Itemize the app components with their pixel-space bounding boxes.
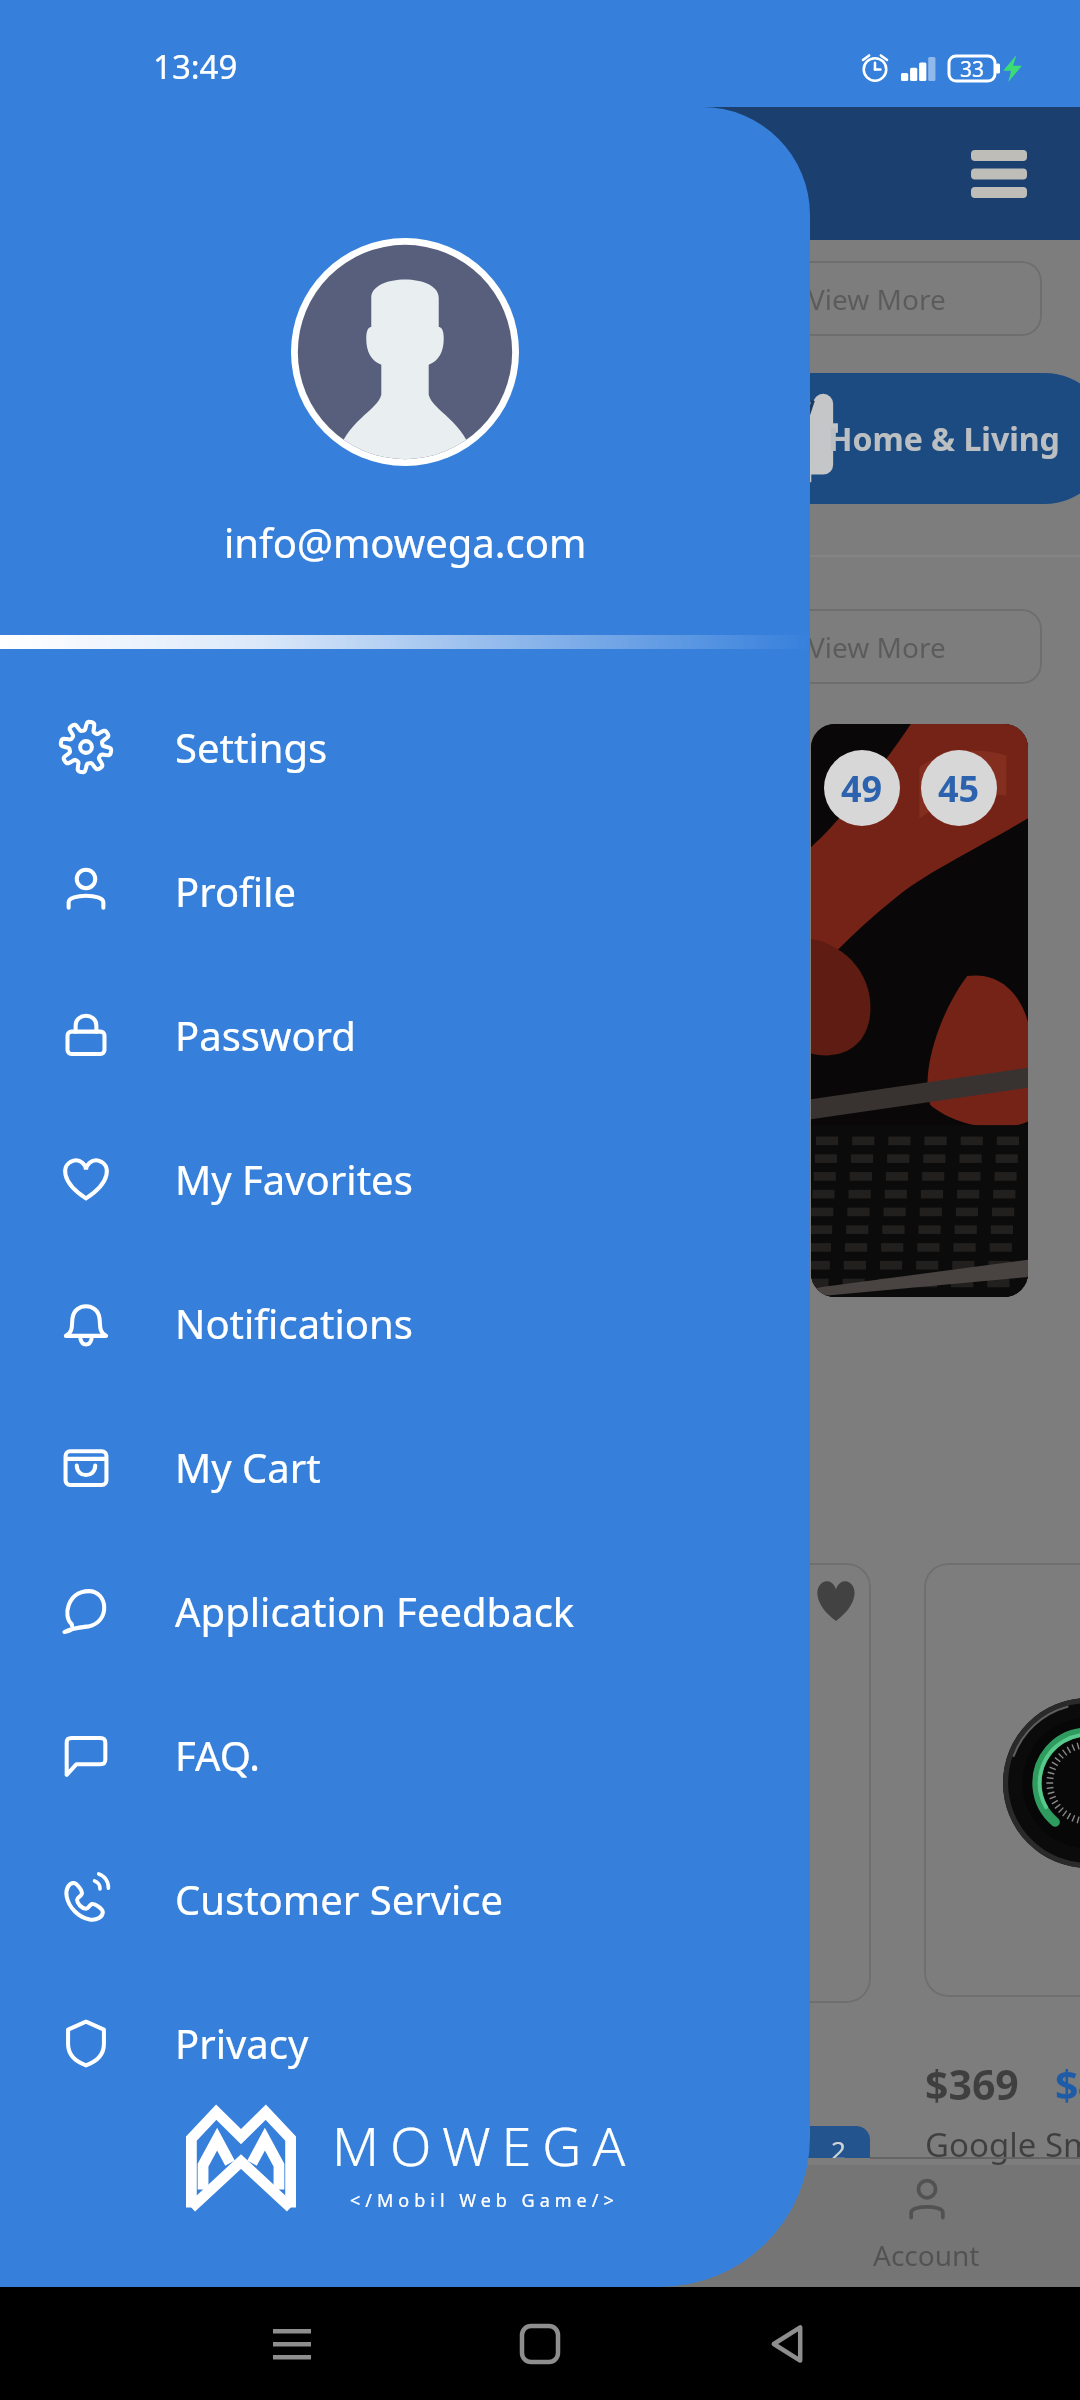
button[interactable]: My Cart: [0, 1395, 810, 1539]
staticText: </Mobil Web Game/>: [350, 2188, 619, 2213]
button[interactable]: View More: [680, 261, 1042, 336]
staticText: View More: [808, 280, 946, 318]
button[interactable]: Recents: [232, 2287, 352, 2400]
staticText: 45: [938, 764, 980, 813]
staticText: MOWEGA: [332, 2108, 637, 2182]
button[interactable]: Notifications: [0, 1251, 810, 1395]
button[interactable]: View More: [680, 609, 1042, 684]
staticText: Profile: [175, 864, 297, 918]
button[interactable]: [924, 1563, 1080, 1997]
button[interactable]: Privacy: [0, 1971, 810, 2115]
button[interactable]: Profile: [0, 819, 810, 963]
staticText: $369: [925, 2056, 1019, 2112]
staticText: 33: [960, 55, 985, 84]
staticText: Customer Service: [175, 1872, 504, 1926]
staticText: $4: [1055, 2056, 1080, 2112]
button[interactable]: Application Feedback: [0, 1539, 810, 1683]
staticText: Google Sm: [925, 2122, 1080, 2167]
staticText: 2: [831, 2132, 846, 2158]
staticText: info@mowega.com: [224, 515, 587, 569]
staticText: Settings: [175, 720, 328, 774]
staticText: Notifications: [175, 1296, 413, 1350]
staticText: Home & Living: [828, 417, 1060, 461]
staticText: Password: [175, 1008, 356, 1062]
button[interactable]: [560, 1563, 871, 2003]
staticText: 13:49: [153, 44, 238, 89]
staticText: My Cart: [175, 1440, 321, 1494]
staticText: FAQ.: [175, 1728, 261, 1782]
button[interactable]: FAQ.: [0, 1683, 810, 1827]
button[interactable]: My Favorites: [0, 1107, 810, 1251]
button[interactable]: Back: [727, 2287, 847, 2400]
button[interactable]: Open navigation menu: [940, 115, 1058, 233]
staticText: View More: [808, 628, 946, 666]
staticText: 49: [841, 764, 883, 813]
button[interactable]: Account: [840, 2165, 1012, 2287]
staticText: Application Feedback: [175, 1584, 575, 1638]
staticText: Privacy: [175, 2016, 309, 2070]
button[interactable]: Home & Living: [470, 373, 1080, 504]
button[interactable]: [811, 724, 1028, 1297]
button[interactable]: Settings: [0, 675, 810, 819]
button[interactable]: Password: [0, 963, 810, 1107]
button[interactable]: Home: [480, 2287, 600, 2400]
staticText: My Favorites: [175, 1152, 413, 1206]
staticText: Account: [873, 2236, 980, 2274]
button[interactable]: Customer Service: [0, 1827, 810, 1971]
